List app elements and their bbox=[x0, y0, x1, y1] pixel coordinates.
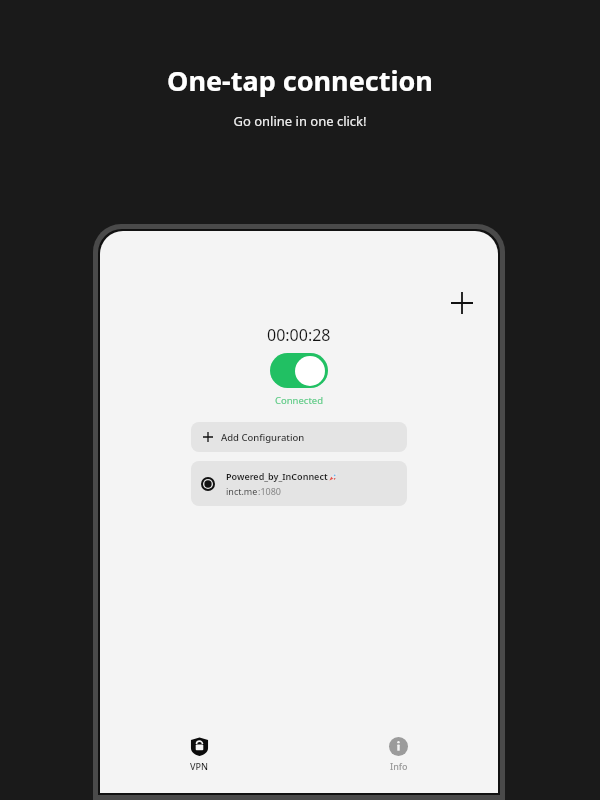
button[interactable]: VPN connection toggle, on bbox=[270, 353, 328, 388]
staticText: Add Configuration bbox=[221, 431, 305, 444]
staticText: :1080 bbox=[258, 485, 282, 497]
staticText: Info bbox=[390, 760, 408, 772]
button[interactable]: VPN bbox=[100, 731, 299, 789]
staticText: Powered_by_InConnect bbox=[226, 470, 328, 482]
button[interactable]: Add Configuration bbox=[191, 422, 407, 452]
staticText: Connected bbox=[275, 394, 324, 407]
button[interactable]: Info bbox=[299, 731, 498, 789]
staticText: 00:00:28 bbox=[267, 324, 331, 346]
button[interactable]: Add bbox=[444, 285, 480, 321]
staticText: One-tap connection bbox=[167, 62, 433, 99]
staticText: Go online in one click! bbox=[233, 112, 367, 130]
staticText: inct.me bbox=[226, 485, 258, 497]
button[interactable]: Powered_by_InConnect bbox=[191, 461, 407, 506]
staticText: VPN bbox=[190, 760, 209, 772]
